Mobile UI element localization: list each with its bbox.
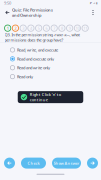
button[interactable]: Next question	[87, 158, 98, 169]
button[interactable]: Question 9	[66, 25, 73, 31]
staticText: Quiz: File Permissions and Ownership	[12, 7, 53, 18]
button[interactable]: Previous question	[4, 158, 15, 169]
button[interactable]: Question 7	[51, 25, 57, 31]
button[interactable]: More options	[88, 6, 98, 19]
button[interactable]: Back	[3, 6, 12, 19]
staticText: ◤ ⊿ ▮	[90, 1, 97, 4]
staticText: 1	[7, 25, 9, 31]
button[interactable]: Read and write only	[0, 63, 101, 72]
staticText: 4	[30, 25, 32, 31]
staticText: Show Answer	[53, 160, 79, 166]
staticText: 11	[83, 25, 87, 31]
button[interactable]: Question 4	[28, 25, 34, 31]
staticText: 5	[38, 25, 40, 31]
staticText: 8	[61, 25, 63, 31]
staticText: 3	[22, 25, 24, 31]
staticText: 2	[14, 25, 16, 31]
staticText: 9:50	[4, 0, 11, 6]
button[interactable]: Question 3	[20, 25, 26, 31]
button[interactable]: Question 11	[82, 25, 88, 31]
button[interactable]: Read, write, and execute	[0, 45, 101, 54]
button[interactable]: Question 10	[74, 25, 80, 31]
button[interactable]: Read and execute only	[0, 54, 101, 63]
staticText: Read and execute only	[17, 56, 54, 61]
staticText: Read and write only	[17, 65, 50, 70]
staticText: Check	[27, 160, 39, 166]
button[interactable]: Question 6	[43, 25, 49, 31]
button[interactable]: Read only	[0, 72, 101, 81]
staticText: Q3. In the permission string -rwxr-x---,…	[4, 32, 79, 43]
staticText: Read, write, and execute	[17, 47, 58, 53]
button[interactable]: Question 5	[35, 25, 42, 31]
button[interactable]: Question 2	[12, 25, 18, 31]
button[interactable]: Question 8	[59, 25, 65, 31]
staticText: 7	[53, 25, 55, 31]
staticText: 10	[75, 25, 79, 31]
button[interactable]: Question 1	[4, 25, 11, 31]
staticText: 9	[69, 25, 71, 31]
button[interactable]: Check	[21, 158, 46, 169]
staticText: Read only	[17, 74, 33, 79]
staticText: Right Click 'n' to continue	[30, 92, 61, 102]
button[interactable]: Show Answer	[52, 158, 81, 169]
staticText: 6	[45, 25, 47, 31]
